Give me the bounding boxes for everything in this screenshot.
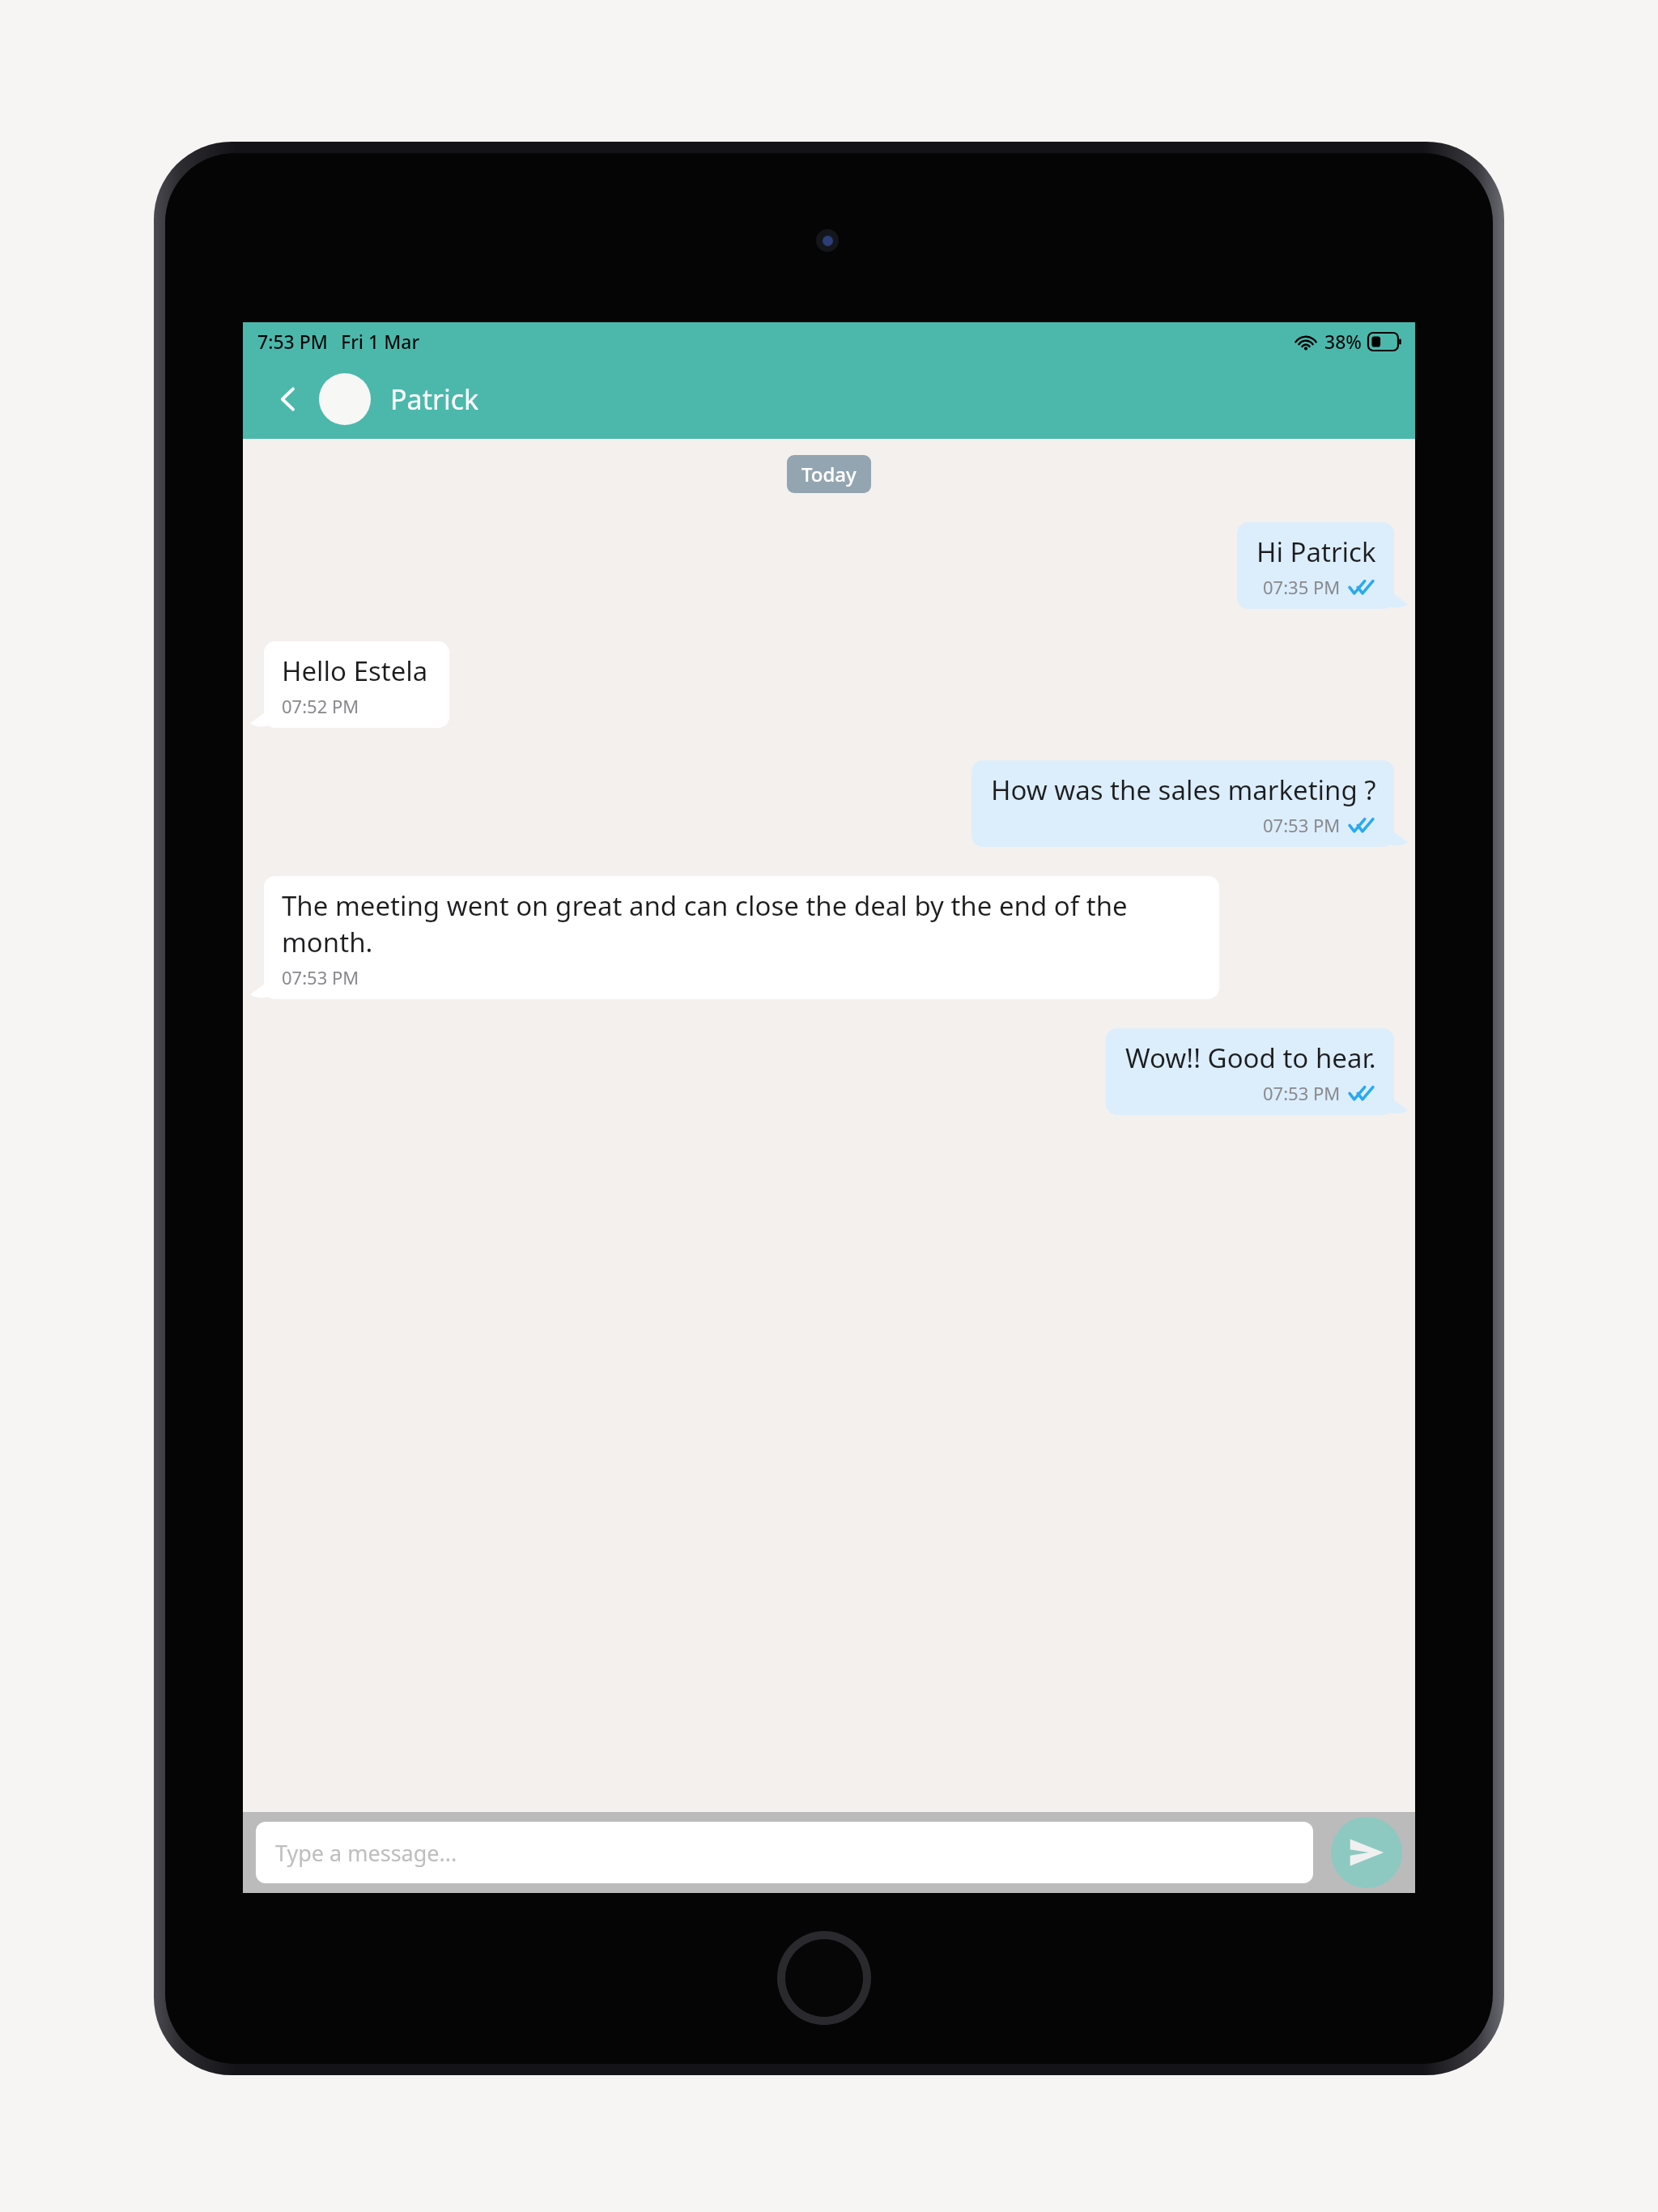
staticText: 07:53 PM (1263, 1081, 1341, 1105)
staticText: Hello Estela (282, 653, 428, 689)
button[interactable]: Send (1331, 1817, 1402, 1888)
staticText: How was the sales marketing ? (991, 772, 1376, 808)
staticText: 07:53 PM (282, 965, 359, 989)
staticText: 7:53 PM (257, 329, 328, 354)
staticText: Type a message... (275, 1838, 457, 1868)
staticText: Wow!! Good to hear. (1125, 1040, 1376, 1076)
button[interactable]: Wow!! Good to hear. (249, 1028, 1409, 1115)
staticText: 07:52 PM (282, 694, 359, 718)
staticText: Today (801, 461, 857, 487)
staticText: 07:35 PM (1263, 575, 1341, 599)
button[interactable]: Back (267, 378, 309, 420)
staticText: 38% (1324, 329, 1362, 354)
button[interactable]: Hi Patrick (249, 522, 1409, 609)
button[interactable]: Patrick (319, 373, 479, 425)
staticText: 07:53 PM (1263, 813, 1341, 837)
staticText: Fri 1 Mar (341, 329, 420, 354)
button[interactable]: Type a message... (256, 1822, 1313, 1883)
staticText: Hi Patrick (1256, 534, 1376, 570)
button[interactable]: How was the sales marketing ? (249, 760, 1409, 847)
button[interactable]: The meeting went on great and can close … (249, 876, 1409, 999)
staticText: Patrick (390, 381, 479, 418)
button[interactable]: Hello Estela (249, 641, 1409, 728)
staticText: The meeting went on great and can close … (282, 887, 1198, 960)
